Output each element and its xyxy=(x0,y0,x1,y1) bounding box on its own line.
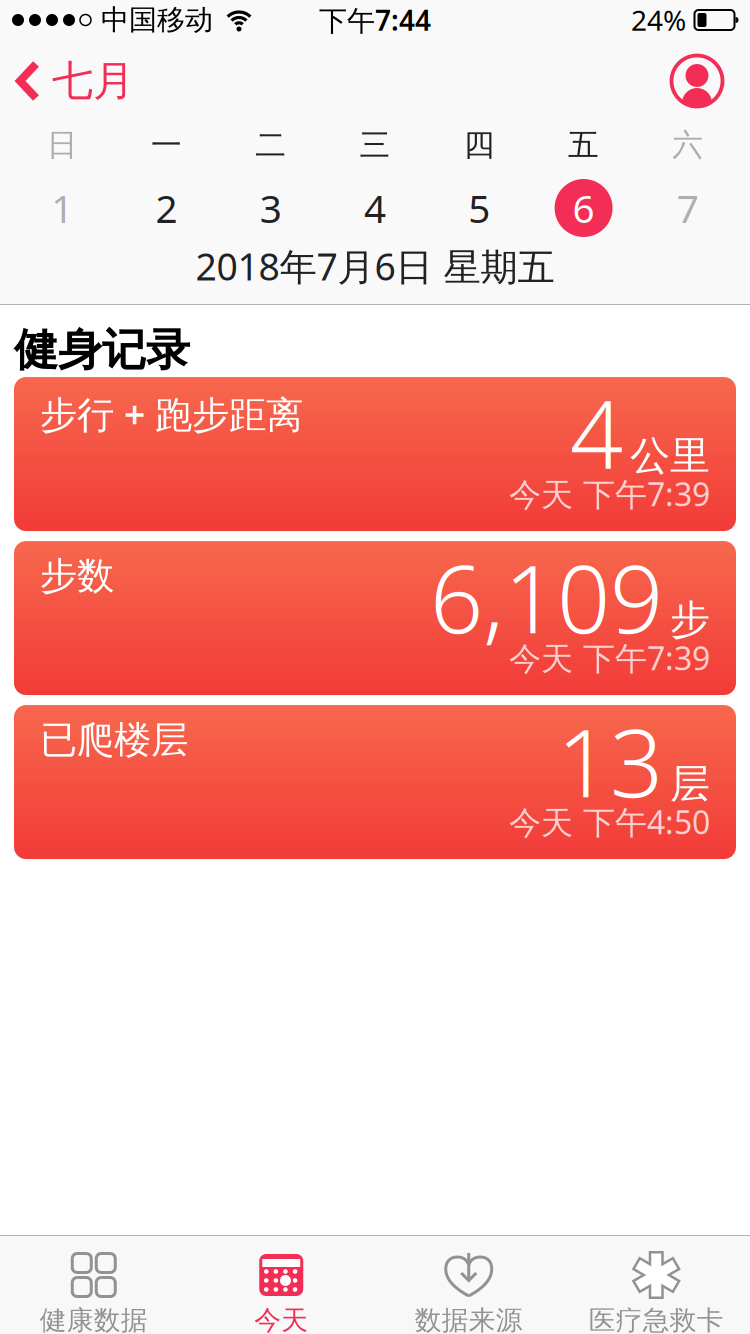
staticText: 7 xyxy=(677,182,699,234)
staticText: 健康数据 xyxy=(40,1304,148,1334)
staticText: 公里 xyxy=(630,431,710,480)
staticText: 今天 下午7:39 xyxy=(509,636,710,679)
staticText: 一 xyxy=(151,126,182,164)
staticText: 层 xyxy=(670,759,710,808)
staticText: 2 xyxy=(155,182,177,234)
staticText: 6 xyxy=(573,182,595,234)
staticText: 下午7:44 xyxy=(319,1,431,39)
staticText: 步数 xyxy=(40,553,114,599)
staticText: 今天 下午7:39 xyxy=(509,472,710,515)
staticText: 七月 xyxy=(52,56,134,106)
staticText: 日 xyxy=(47,126,78,164)
staticText: 5 xyxy=(468,182,490,234)
staticText: 13 xyxy=(557,699,663,823)
staticText: 三 xyxy=(359,126,390,164)
staticText: 已爬楼层 xyxy=(40,717,188,763)
staticText: 健身记录 xyxy=(14,323,190,377)
staticText: 四 xyxy=(464,126,495,164)
staticText: 六 xyxy=(672,126,703,164)
staticText: 24% xyxy=(631,1,686,39)
staticText: 步 xyxy=(670,595,710,644)
staticText: 4 xyxy=(570,371,623,495)
staticText: 医疗急救卡 xyxy=(589,1304,724,1334)
staticText: 今天 下午4:50 xyxy=(509,800,710,843)
staticText: 6,109 xyxy=(430,535,663,659)
staticText: 1 xyxy=(51,182,73,234)
staticText: 二 xyxy=(255,126,286,164)
staticText: 4 xyxy=(364,182,386,234)
staticText: 今天 xyxy=(254,1304,308,1334)
staticText: 步行 + 跑步距离 xyxy=(40,389,303,439)
staticText: 3 xyxy=(260,182,282,234)
staticText: 中国移动 xyxy=(101,3,213,37)
staticText: 五 xyxy=(568,126,599,164)
staticText: 数据来源 xyxy=(415,1304,523,1334)
staticText: 2018年7月6日 星期五 xyxy=(195,241,554,291)
